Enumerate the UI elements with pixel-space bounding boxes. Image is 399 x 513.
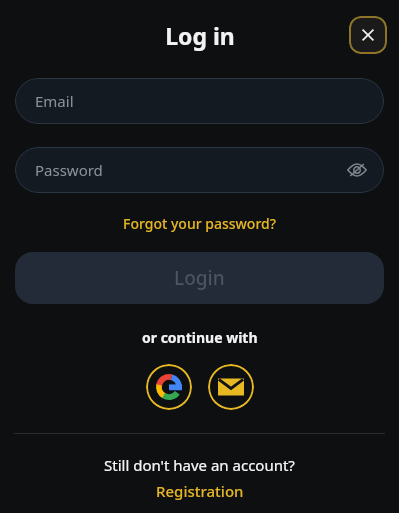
button[interactable]: Close [349, 16, 387, 54]
staticText: or continue with [142, 328, 258, 347]
button[interactable]: Email [15, 78, 384, 124]
button[interactable]: Forgot your password? [115, 211, 284, 236]
staticText: Log in [165, 20, 235, 51]
staticText: Forgot your password? [123, 214, 276, 233]
button[interactable]: Login [15, 252, 384, 304]
staticText: Login [174, 265, 225, 291]
staticText: Password [35, 160, 103, 180]
button[interactable]: Continue with Email [208, 364, 254, 410]
button[interactable]: Show password [344, 157, 370, 183]
button[interactable]: Continue with Google [146, 364, 192, 410]
button[interactable]: Registration [148, 479, 252, 503]
staticText: Email [35, 91, 74, 111]
button[interactable]: Password [15, 147, 384, 193]
staticText: Still don't have an account? [104, 455, 295, 475]
staticText: Registration [156, 481, 244, 501]
